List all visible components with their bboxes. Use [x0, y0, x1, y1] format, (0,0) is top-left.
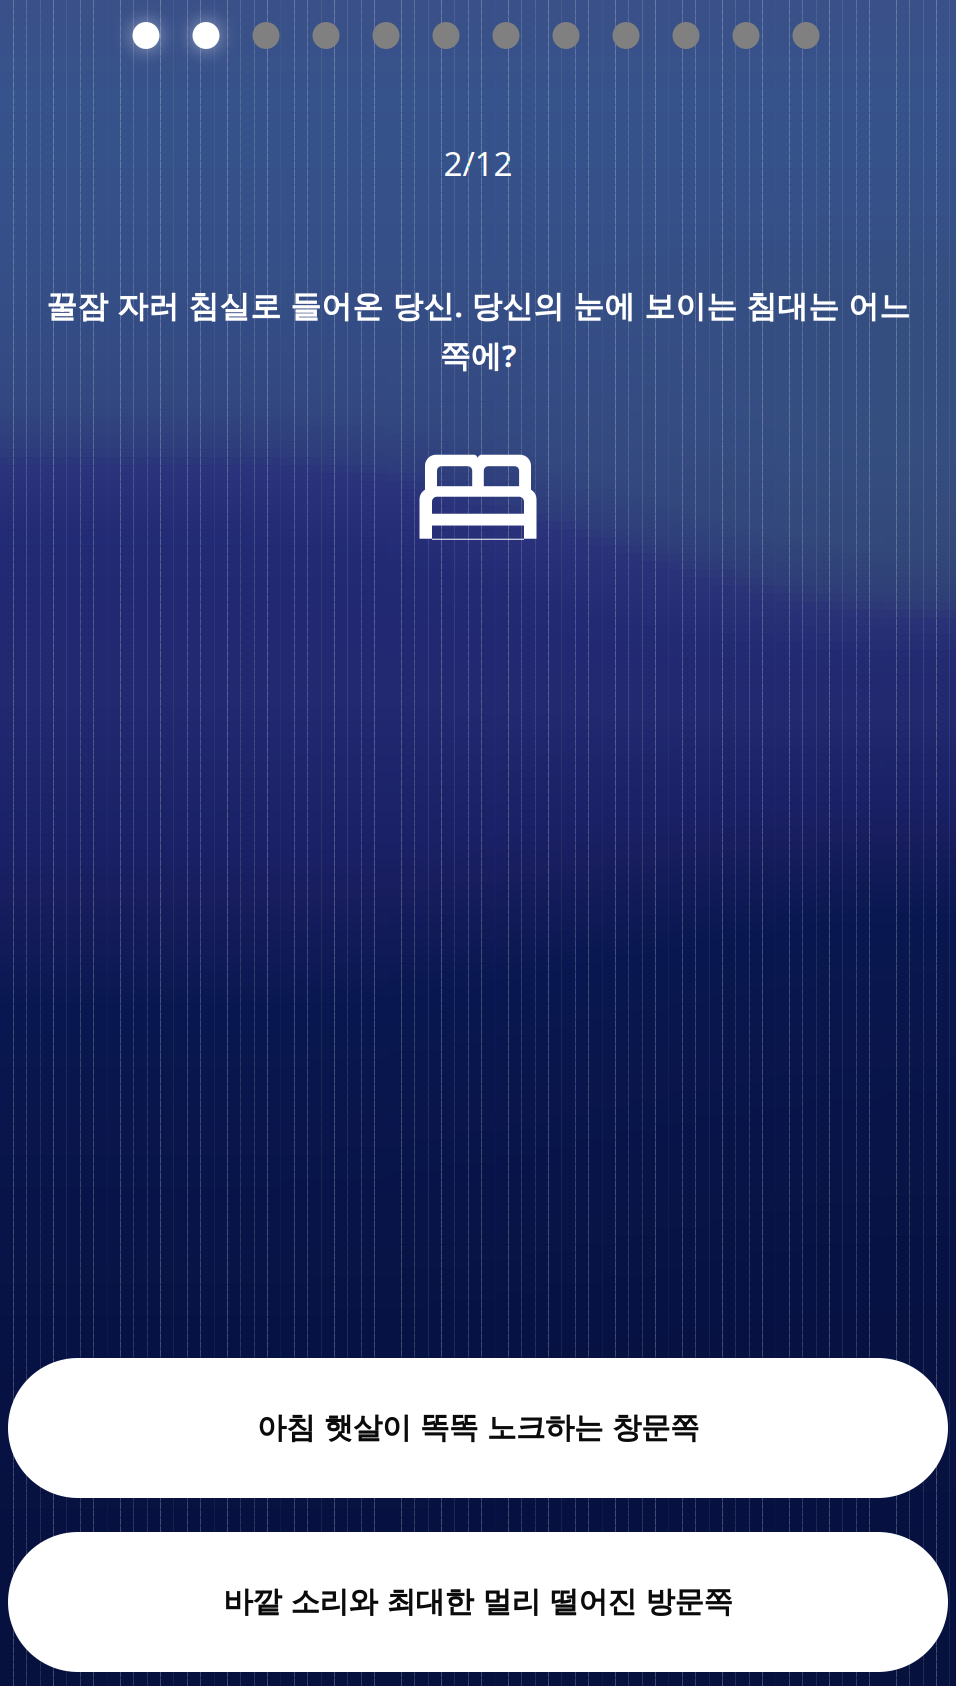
- staticText: 2/12: [443, 141, 512, 185]
- button[interactable]: 아침 햇살이 똑똑 노크하는 창문쪽: [8, 1358, 948, 1498]
- button[interactable]: 바깥 소리와 최대한 멀리 떨어진 방문쪽: [8, 1532, 948, 1672]
- staticText: 꿀잠 자러 침실로 들어온 당신. 당신의 눈에 보이는 침대는 어느 쪽에?: [46, 285, 910, 376]
- staticText: 바깥 소리와 최대한 멀리 떨어진 방문쪽: [223, 1584, 732, 1620]
- staticText: 아침 햇살이 똑똑 노크하는 창문쪽: [257, 1410, 699, 1446]
